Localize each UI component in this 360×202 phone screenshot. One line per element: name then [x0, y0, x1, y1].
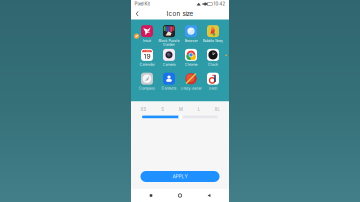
staticText: APPLY	[172, 174, 187, 179]
button[interactable]: Icon size slider	[131, 112, 229, 120]
staticText: XS	[140, 107, 146, 112]
staticText: Clock	[208, 62, 218, 67]
staticText: Bubble Story	[203, 38, 223, 43]
staticText: 19	[143, 52, 150, 60]
button[interactable]: Block Puzzle	[158, 25, 180, 49]
staticText: Browser	[184, 38, 197, 43]
button[interactable]: Recent apps	[142, 189, 160, 202]
staticText: Contacts	[161, 86, 176, 90]
button[interactable]: THU	[136, 49, 158, 73]
button[interactable]: Compass	[136, 73, 158, 96]
button[interactable]: Browser	[180, 25, 202, 49]
staticText: S	[161, 107, 164, 112]
staticText: Camera	[162, 62, 175, 67]
staticText: Block Puzzle	[158, 38, 179, 43]
staticText: Pixel Kit	[134, 1, 149, 7]
button[interactable]: Back	[131, 8, 144, 19]
button[interactable]: Contacts	[158, 73, 180, 96]
staticText: Icon size	[166, 10, 193, 17]
staticText: Calendar	[139, 62, 154, 67]
staticText: Crazy Juicer	[180, 86, 201, 90]
button[interactable]: Intuit	[136, 25, 158, 49]
button[interactable]: Bubble Story	[202, 25, 224, 49]
button[interactable]: Back	[200, 189, 218, 202]
staticText: Compass	[139, 86, 155, 90]
staticText: Darzi	[208, 86, 217, 90]
button[interactable]: APPLY	[140, 171, 219, 182]
staticText: XL	[214, 107, 219, 112]
staticText: 10:42	[213, 1, 225, 7]
staticText: Chrome	[184, 62, 197, 67]
button[interactable]: Darzi	[202, 73, 224, 96]
staticText: THU	[144, 49, 150, 52]
button[interactable]: Home	[171, 189, 189, 202]
button[interactable]: Camera	[158, 49, 180, 73]
button[interactable]: Chrome	[180, 49, 202, 73]
staticText: M	[179, 107, 183, 112]
button[interactable]: Clock	[202, 49, 224, 73]
staticText: L	[198, 107, 200, 112]
staticText: Garden	[163, 42, 175, 47]
button[interactable]: Crazy Juicer	[180, 73, 202, 96]
staticText: Intuit	[143, 38, 151, 43]
